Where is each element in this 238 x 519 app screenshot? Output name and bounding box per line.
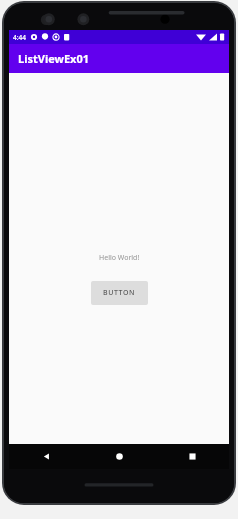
button[interactable]: Home [83, 444, 156, 469]
button[interactable]: Back [9, 444, 83, 469]
button[interactable]: Recent apps [156, 444, 229, 469]
staticText: BUTTON [103, 288, 136, 298]
button[interactable]: BUTTON [91, 281, 148, 305]
staticText: ListViewEx01 [18, 51, 90, 66]
staticText: 4:44 [13, 33, 26, 42]
staticText: Hello World! [99, 253, 140, 263]
